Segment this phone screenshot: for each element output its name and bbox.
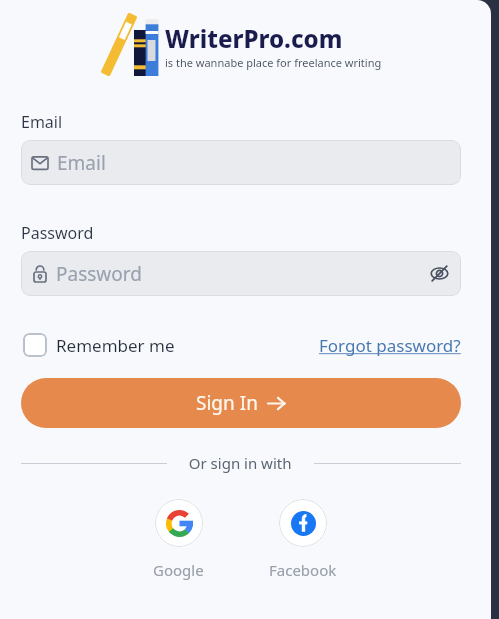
button[interactable]: Sign In xyxy=(21,378,461,428)
button[interactable]: Facebook xyxy=(269,499,337,580)
staticText: Remember me xyxy=(56,334,175,357)
button[interactable]: Remember me xyxy=(21,333,175,357)
staticText: Google xyxy=(153,560,204,580)
staticText: Email xyxy=(21,111,63,133)
staticText: Or sign in with xyxy=(181,453,300,473)
staticText: Password xyxy=(21,222,94,244)
button[interactable]: Password xyxy=(21,251,461,296)
button[interactable]: Forgot password? xyxy=(319,334,461,357)
staticText: Facebook xyxy=(269,560,337,580)
staticText: Sign In xyxy=(196,390,258,416)
staticText: is the wannabe place for freelance writi… xyxy=(165,55,382,70)
staticText: WriterPro.com xyxy=(165,22,343,55)
staticText: Password xyxy=(56,261,142,287)
button[interactable]: Google xyxy=(153,499,204,580)
button[interactable]: Email xyxy=(21,140,461,185)
staticText: Email xyxy=(57,150,106,176)
